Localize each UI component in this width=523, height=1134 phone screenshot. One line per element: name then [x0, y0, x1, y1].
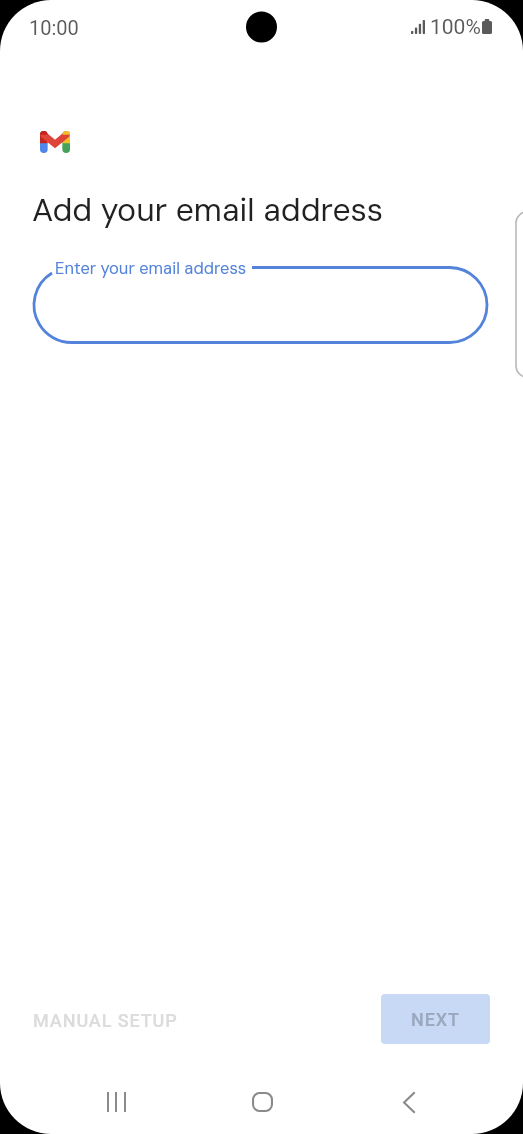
button[interactable]: Back	[391, 1084, 427, 1120]
staticText: 100%	[430, 15, 481, 40]
staticText: NEXT	[411, 1009, 460, 1030]
staticText: Add your email address	[32, 189, 384, 231]
button[interactable]: NEXT	[381, 994, 490, 1044]
button[interactable]: Home	[244, 1084, 280, 1120]
button[interactable]: MANUAL SETUP	[19, 999, 192, 1042]
button[interactable]: Recent apps	[98, 1084, 134, 1120]
staticText: Enter your email address	[55, 258, 247, 279]
staticText: 10:00	[29, 16, 79, 39]
staticText: MANUAL SETUP	[33, 1010, 178, 1031]
